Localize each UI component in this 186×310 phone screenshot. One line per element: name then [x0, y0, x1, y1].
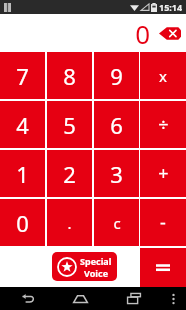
- button[interactable]: .: [47, 199, 92, 246]
- button[interactable]: Menu: [160, 287, 186, 310]
- button[interactable]: 7: [0, 52, 45, 99]
- button[interactable]: [140, 248, 186, 287]
- button[interactable]: 8: [47, 52, 92, 99]
- staticText: 7: [16, 61, 29, 91]
- button[interactable]: +: [140, 150, 186, 197]
- button[interactable]: 1: [0, 150, 45, 197]
- staticText: .: [67, 213, 72, 233]
- button[interactable]: 0: [0, 199, 45, 246]
- button[interactable]: Home: [54, 287, 107, 310]
- button[interactable]: 3: [94, 150, 139, 197]
- staticText: -: [160, 210, 166, 235]
- staticText: 4: [16, 110, 29, 140]
- staticText: 9: [110, 61, 123, 91]
- button[interactable]: x: [140, 52, 186, 99]
- button[interactable]: Delete: [159, 26, 181, 41]
- staticText: Voice: [84, 267, 109, 279]
- button[interactable]: 9: [94, 52, 139, 99]
- staticText: 6: [110, 110, 123, 140]
- staticText: 15:14: [159, 1, 183, 13]
- button[interactable]: Back: [0, 287, 54, 310]
- staticText: 8: [63, 61, 76, 91]
- staticText: 1: [16, 159, 29, 189]
- staticText: Special: [80, 255, 112, 267]
- button[interactable]: ÷: [140, 101, 186, 148]
- staticText: +: [158, 161, 169, 186]
- staticText: c: [113, 213, 121, 233]
- button[interactable]: c: [94, 199, 139, 246]
- staticText: x: [159, 66, 167, 86]
- button[interactable]: Recent apps: [107, 287, 160, 310]
- staticText: 5: [63, 110, 76, 140]
- button[interactable]: 4: [0, 101, 45, 148]
- staticText: 2: [63, 159, 76, 189]
- button[interactable]: 5: [47, 101, 92, 148]
- staticText: 0: [16, 208, 29, 238]
- button[interactable]: 2: [47, 150, 92, 197]
- staticText: 3: [110, 159, 123, 189]
- button[interactable]: 6: [94, 101, 139, 148]
- button[interactable]: Special: [52, 252, 117, 281]
- staticText: 0: [135, 16, 150, 51]
- staticText: ÷: [158, 112, 169, 137]
- button[interactable]: -: [140, 199, 186, 246]
